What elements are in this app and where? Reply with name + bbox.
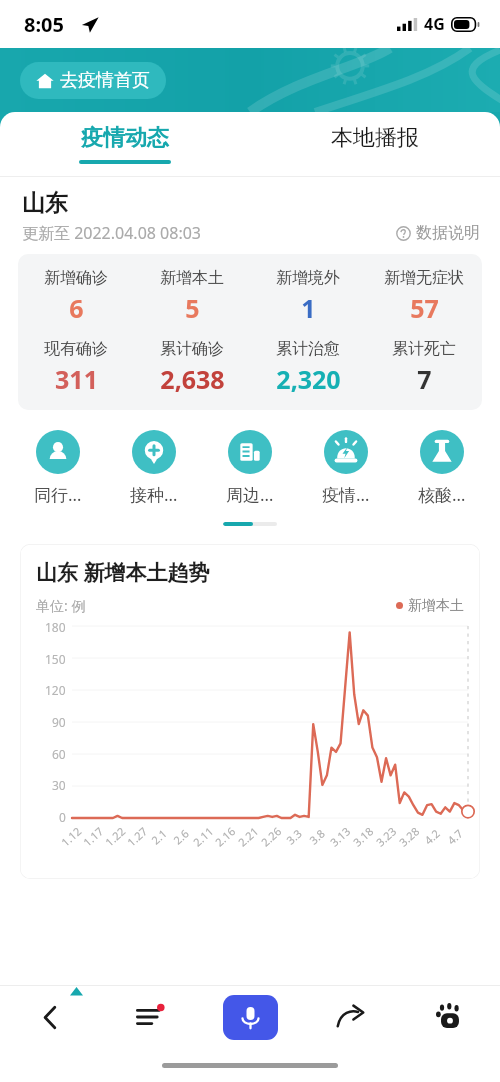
- staticText: 60: [52, 746, 66, 762]
- staticText: 7: [417, 362, 432, 396]
- staticText: 山东 新增本土趋势: [36, 558, 210, 587]
- button[interactable]: 累计治愈: [250, 339, 366, 396]
- staticText: 3.8: [306, 826, 328, 847]
- staticText: 8:05: [24, 11, 64, 38]
- staticText: 核酸…: [418, 483, 466, 506]
- staticText: 180: [45, 619, 66, 635]
- staticText: 同行…: [34, 483, 82, 506]
- staticText: 新增无症状: [384, 268, 464, 288]
- staticText: 2.6: [170, 826, 192, 847]
- staticText: 1.12: [58, 824, 84, 849]
- staticText: 2,320: [276, 362, 341, 396]
- button[interactable]: Back: [0, 986, 100, 1048]
- staticText: 1.27: [124, 824, 150, 849]
- button[interactable]: 周边…: [202, 430, 298, 506]
- button[interactable]: Menu: [100, 986, 200, 1048]
- staticText: 单位: 例: [36, 596, 86, 615]
- staticText: 新增本土: [408, 597, 464, 615]
- staticText: 3.13: [327, 824, 353, 849]
- button[interactable]: 去疫情首页: [20, 62, 166, 99]
- button[interactable]: 核酸…: [394, 430, 490, 506]
- staticText: 数据说明: [416, 223, 480, 243]
- staticText: 2.16: [212, 824, 238, 849]
- staticText: 2.21: [235, 824, 261, 849]
- staticText: 4.2: [421, 826, 443, 847]
- staticText: 新增境外: [276, 268, 340, 288]
- staticText: 去疫情首页: [60, 69, 150, 92]
- staticText: 3.28: [396, 824, 422, 849]
- staticText: 累计死亡: [392, 339, 456, 359]
- staticText: 疫情…: [322, 483, 370, 506]
- button[interactable]: 累计确诊: [134, 339, 250, 396]
- staticText: 3.18: [350, 824, 376, 849]
- staticText: 山东: [22, 189, 68, 218]
- staticText: 150: [45, 651, 66, 667]
- button[interactable]: 疫情动态: [0, 112, 250, 176]
- staticText: 新增本土: [160, 268, 224, 288]
- staticText: 90: [52, 714, 66, 730]
- staticText: 接种…: [130, 483, 178, 506]
- staticText: 2.11: [190, 824, 216, 849]
- staticText: 120: [45, 682, 66, 698]
- staticText: 疫情动态: [81, 124, 169, 152]
- button[interactable]: Share: [300, 986, 400, 1048]
- button[interactable]: 本地播报: [250, 112, 500, 176]
- button[interactable]: 新增无症状: [366, 268, 482, 325]
- staticText: 更新至 2022.04.08 08:03: [22, 222, 202, 244]
- staticText: 累计确诊: [160, 339, 224, 359]
- staticText: 本地播报: [331, 124, 419, 152]
- staticText: 6: [69, 291, 84, 325]
- staticText: 周边…: [226, 483, 274, 506]
- staticText: 57: [410, 291, 439, 325]
- staticText: 2,638: [160, 362, 225, 396]
- staticText: 1.22: [102, 824, 128, 849]
- button[interactable]: 数据说明: [396, 223, 480, 243]
- button[interactable]: Baidu: [400, 986, 500, 1048]
- button[interactable]: 现有确诊: [18, 339, 134, 396]
- staticText: 5: [185, 291, 200, 325]
- staticText: 2.1: [148, 826, 170, 847]
- button[interactable]: 同行…: [10, 430, 106, 506]
- button[interactable]: 疫情…: [298, 430, 394, 506]
- button[interactable]: 新增境外: [250, 268, 366, 325]
- staticText: 3.23: [373, 824, 399, 849]
- staticText: 新增确诊: [44, 268, 108, 288]
- staticText: 4G: [424, 13, 445, 35]
- button[interactable]: 累计死亡: [366, 339, 482, 396]
- staticText: 0: [59, 809, 66, 825]
- staticText: 累计治愈: [276, 339, 340, 359]
- staticText: 311: [55, 362, 98, 396]
- staticText: 1: [301, 291, 316, 325]
- staticText: 30: [52, 777, 66, 793]
- staticText: 2.26: [258, 824, 284, 849]
- staticText: 4.7: [444, 826, 466, 847]
- staticText: 现有确诊: [44, 339, 108, 359]
- button[interactable]: 接种…: [106, 430, 202, 506]
- button[interactable]: Voice search: [223, 995, 278, 1040]
- staticText: 3.3: [283, 826, 305, 847]
- staticText: 1.17: [80, 824, 106, 849]
- button[interactable]: 新增确诊: [18, 268, 134, 325]
- button[interactable]: 新增本土: [134, 268, 250, 325]
